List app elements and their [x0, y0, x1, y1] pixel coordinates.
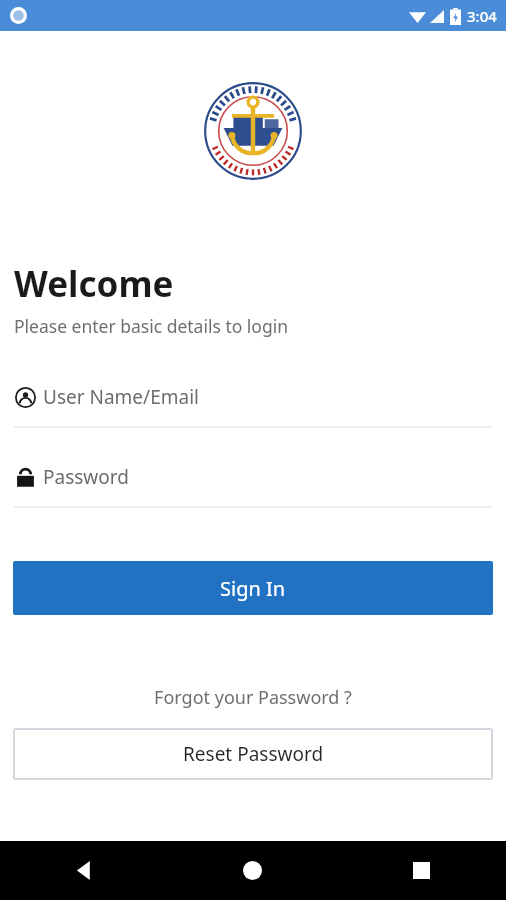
- button[interactable]: Home: [168, 841, 337, 900]
- button[interactable]: Reset Password: [13, 728, 493, 780]
- button[interactable]: Back: [0, 841, 168, 900]
- button[interactable]: User Name/Email: [0, 381, 506, 428]
- button[interactable]: Password: [0, 461, 506, 508]
- staticText: Password: [43, 464, 129, 490]
- staticText: Reset Password: [183, 741, 324, 767]
- staticText: User Name/Email: [43, 384, 199, 410]
- staticText: Welcome: [14, 260, 174, 308]
- button[interactable]: Sign In: [13, 561, 493, 615]
- button[interactable]: Recent apps: [337, 841, 506, 900]
- staticText: Please enter basic details to login: [14, 314, 289, 338]
- button[interactable]: Forgot your Password ?: [0, 681, 506, 714]
- staticText: Forgot your Password ?: [154, 685, 352, 710]
- staticText: 3:04: [467, 6, 497, 26]
- staticText: Sign In: [220, 575, 286, 602]
